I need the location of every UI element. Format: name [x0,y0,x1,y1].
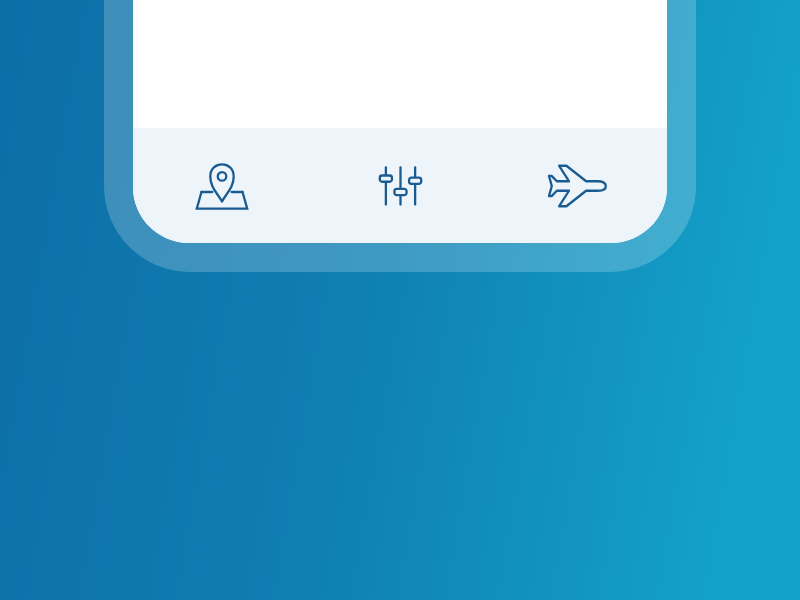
button[interactable]: Settings sliders [311,128,489,243]
button[interactable]: Map location [133,128,311,243]
button[interactable]: Flights [489,128,667,243]
